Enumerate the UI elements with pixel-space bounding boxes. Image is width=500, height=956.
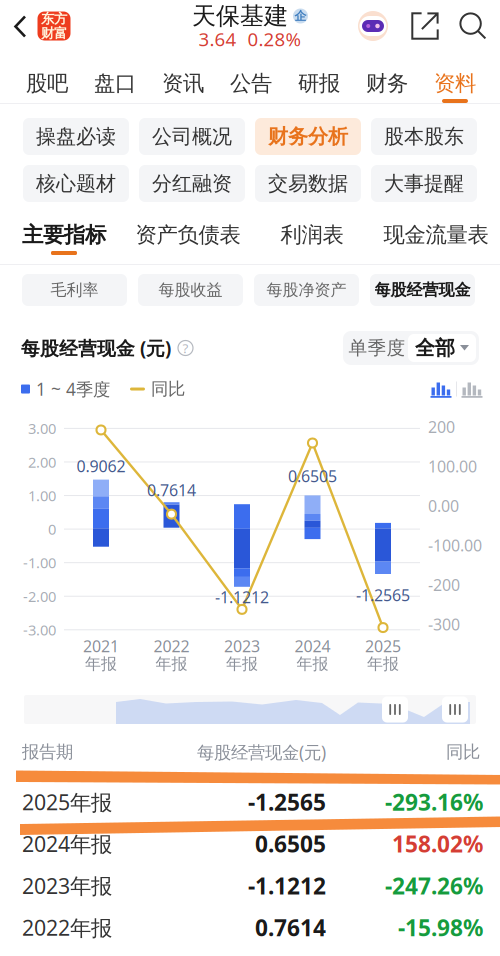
staticText: 1 ~ 4季度 xyxy=(36,377,110,400)
staticText: 年报 xyxy=(85,654,117,674)
staticText: 核心题材 xyxy=(36,171,116,196)
staticText: -2.00 xyxy=(23,586,56,606)
button[interactable]: 操盘必读 xyxy=(23,118,129,155)
staticText: 2.00 xyxy=(28,452,56,472)
staticText: 同比 xyxy=(151,378,185,400)
staticText: 200 xyxy=(428,416,455,437)
button[interactable]: 资讯 xyxy=(149,54,217,103)
button[interactable]: 核心题材 xyxy=(23,165,129,202)
button[interactable]: 返回 xyxy=(1,1,39,53)
staticText: -1.1212 xyxy=(215,586,269,608)
staticText: 报告期 xyxy=(22,741,73,763)
staticText: 资料 xyxy=(434,70,476,97)
staticText: -200 xyxy=(428,574,460,595)
staticText: 股吧 xyxy=(26,70,68,97)
staticText: 3.64 xyxy=(198,27,236,51)
staticText: 0.6505 xyxy=(255,829,326,859)
button[interactable]: 2024年报 xyxy=(0,823,500,865)
button[interactable]: 主要指标 xyxy=(2,213,126,261)
staticText: 每股收益 xyxy=(158,280,222,300)
button[interactable]: 分享 xyxy=(403,0,447,52)
staticText: 0 xyxy=(48,519,56,539)
button[interactable]: 柱状图 xyxy=(426,377,456,401)
button[interactable]: 财务 xyxy=(353,54,421,103)
button[interactable]: 2023年报 xyxy=(0,865,500,907)
staticText: -1.1212 xyxy=(248,870,326,901)
button[interactable]: 每股收益 xyxy=(138,274,243,306)
staticText: 单季度 xyxy=(348,336,405,359)
staticText: 年报 xyxy=(296,654,328,674)
staticText: 年报 xyxy=(226,654,258,674)
button[interactable]: 公告 xyxy=(217,54,285,103)
staticText: 毛利率 xyxy=(50,280,98,300)
staticText: 2024年报 xyxy=(22,830,112,858)
staticText: 1.00 xyxy=(28,486,56,505)
staticText: 年报 xyxy=(367,654,399,674)
staticText: 0.00 xyxy=(428,495,459,516)
staticText: -247.26% xyxy=(385,870,483,901)
button[interactable]: 现金流量表 xyxy=(374,213,498,261)
staticText: 0.6505 xyxy=(288,465,337,487)
button[interactable]: 资料 xyxy=(421,54,489,103)
button[interactable]: 2022年报 xyxy=(0,906,500,948)
staticText: 企 xyxy=(294,9,306,23)
staticText: -3.00 xyxy=(23,620,56,640)
staticText: 公告 xyxy=(230,70,272,97)
staticText: 2025年报 xyxy=(22,788,112,816)
staticText: 同比 xyxy=(446,741,480,763)
staticText: 2023 xyxy=(224,635,260,657)
button[interactable]: 东方财富 xyxy=(32,0,76,52)
button[interactable]: 单季度 xyxy=(346,334,408,362)
button[interactable]: 折线图 xyxy=(457,377,487,401)
staticText: 现金流量表 xyxy=(383,222,488,248)
button[interactable]: 公司概况 xyxy=(139,118,245,155)
staticText: -300 xyxy=(428,614,460,635)
button[interactable]: 大事提醒 xyxy=(371,165,477,202)
staticText: -1.00 xyxy=(23,553,56,572)
button[interactable]: 交易数据 xyxy=(255,165,361,202)
staticText: 年报 xyxy=(155,654,187,674)
button[interactable]: 搜索 xyxy=(451,0,495,52)
staticText: 每股经营现金 xyxy=(374,280,470,300)
staticText: 研报 xyxy=(298,70,340,97)
button[interactable]: 分红融资 xyxy=(139,165,245,202)
staticText: 东方 xyxy=(41,11,67,27)
staticText: 每股经营现金(元) xyxy=(197,740,326,763)
button[interactable]: 每股经营现金 xyxy=(370,274,475,306)
staticText: 天保基建 xyxy=(192,1,288,31)
staticText: -1.2565 xyxy=(356,584,410,606)
button[interactable]: 研报 xyxy=(285,54,353,103)
staticText: 操盘必读 xyxy=(36,124,116,149)
button[interactable]: 全部 xyxy=(408,334,476,362)
button[interactable]: 资产负债表 xyxy=(126,213,250,261)
staticText: 3.00 xyxy=(28,419,56,438)
button[interactable]: 利润表 xyxy=(250,213,374,261)
staticText: -100.00 xyxy=(428,535,482,556)
staticText: 分红融资 xyxy=(152,171,232,196)
staticText: 资讯 xyxy=(162,70,204,97)
staticText: 交易数据 xyxy=(268,171,348,196)
button[interactable]: 股本股东 xyxy=(371,118,477,155)
staticText: 2022年报 xyxy=(22,913,112,941)
staticText: 资产负债表 xyxy=(135,222,240,248)
staticText: 0.28% xyxy=(247,27,301,51)
button[interactable]: 股吧 xyxy=(13,54,81,103)
staticText: 大事提醒 xyxy=(384,171,464,196)
staticText: 2023年报 xyxy=(22,871,112,900)
staticText: 0.9062 xyxy=(76,455,125,477)
button[interactable]: AI 智能助手 xyxy=(351,0,395,52)
button[interactable]: 2025年报 xyxy=(0,781,500,823)
staticText: -15.98% xyxy=(398,912,483,942)
staticText: 0.7614 xyxy=(147,479,196,501)
button[interactable]: 调整起点 xyxy=(382,696,408,722)
staticText: 股本股东 xyxy=(384,124,464,149)
staticText: 2021 xyxy=(83,635,119,657)
staticText: 每股经营现金 (元) xyxy=(21,336,171,360)
button[interactable]: 调整终点 xyxy=(442,696,468,722)
staticText: 2024 xyxy=(294,635,330,657)
button[interactable]: 盘口 xyxy=(81,54,149,103)
button[interactable]: 毛利率 xyxy=(22,274,127,306)
button[interactable]: 每股净资产 xyxy=(254,274,359,306)
staticText: -1.2565 xyxy=(248,787,326,817)
button[interactable]: 财务分析 xyxy=(255,118,361,155)
